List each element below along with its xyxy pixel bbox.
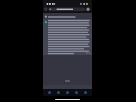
button[interactable] (43, 19, 92, 55)
button[interactable]: Address bar (43, 6, 92, 13)
button[interactable]: Forward (55, 89, 62, 96)
button[interactable]: Home (64, 89, 71, 96)
button[interactable] (43, 13, 92, 19)
button[interactable]: Tabs (73, 89, 80, 96)
button[interactable]: Back (46, 89, 53, 96)
button[interactable]: Menu (82, 89, 89, 96)
